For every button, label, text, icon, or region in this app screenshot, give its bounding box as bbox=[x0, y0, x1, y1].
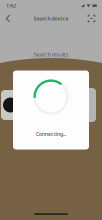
staticText: Search device bbox=[33, 15, 68, 22]
staticText: 1:42 bbox=[6, 2, 16, 9]
staticText: Connecting... bbox=[36, 130, 66, 137]
button[interactable]: Back bbox=[2, 12, 14, 25]
button[interactable]: Scan bbox=[85, 12, 98, 25]
staticText: Search results bbox=[33, 51, 68, 58]
